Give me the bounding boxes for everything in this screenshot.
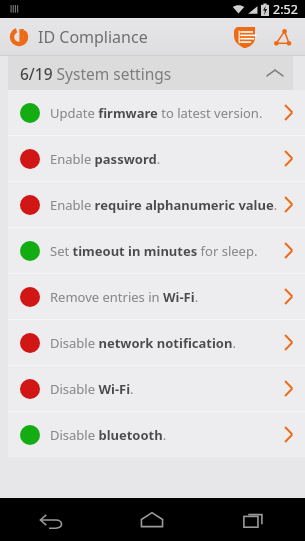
staticText: Enable password.	[50, 150, 161, 168]
button[interactable]: Set timeout in minutes for sleep.	[8, 228, 305, 273]
button[interactable]: Home	[101, 498, 203, 541]
button[interactable]: Enable password.	[8, 136, 305, 181]
button[interactable]: Share	[265, 20, 299, 54]
button[interactable]: 6/19 System settings	[8, 56, 293, 90]
button[interactable]: Disable Wi-Fi.	[8, 366, 305, 411]
button[interactable]: Recent apps	[203, 498, 305, 541]
button[interactable]: Enable require alphanumeric value.	[8, 182, 305, 227]
staticText: Update firmware to latest version.	[50, 104, 263, 122]
staticText: ID Compliance	[38, 26, 148, 48]
staticText: Enable require alphanumeric value.	[50, 196, 278, 214]
button[interactable]: Update firmware to latest version.	[8, 90, 305, 135]
staticText: Disable network notification.	[50, 334, 236, 352]
staticText: Set timeout in minutes for sleep.	[50, 242, 258, 260]
staticText: Remove entries in Wi-Fi.	[50, 288, 199, 306]
staticText: 6/19 System settings	[20, 63, 172, 84]
staticText: Disable bluetooth.	[50, 426, 167, 444]
staticText: Disable Wi-Fi.	[50, 380, 134, 398]
button[interactable]: Disable bluetooth.	[8, 412, 305, 457]
staticText: 2:52	[273, 1, 298, 18]
button[interactable]: Compliance report	[227, 20, 261, 54]
button[interactable]: Disable network notification.	[8, 320, 305, 365]
button[interactable]: Back	[0, 498, 101, 541]
button[interactable]: Remove entries in Wi-Fi.	[8, 274, 305, 319]
